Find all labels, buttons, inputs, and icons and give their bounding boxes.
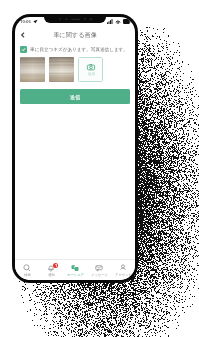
button[interactable]: 車に目立つキズがあります。写真送信します。 xyxy=(20,46,130,53)
button[interactable]: アカウント xyxy=(111,260,135,280)
staticText: 検索 xyxy=(24,273,31,277)
button[interactable]: 送信 xyxy=(20,89,130,104)
staticText: 通知 xyxy=(48,273,55,277)
button[interactable]: メッセージ xyxy=(87,260,111,280)
button[interactable]: Add photo xyxy=(78,57,103,82)
staticText: アカウント xyxy=(115,273,132,277)
staticText: メッセージ xyxy=(91,273,108,277)
button[interactable]: Back xyxy=(15,27,31,43)
staticText: 追加 xyxy=(88,72,95,76)
button[interactable]: カーシェア xyxy=(63,260,87,280)
button[interactable]: 1 xyxy=(39,260,63,280)
staticText: 1 xyxy=(55,264,57,268)
staticText: 10:06 xyxy=(20,19,31,25)
staticText: 車に関する画像 xyxy=(53,31,97,39)
staticText: 送信 xyxy=(70,94,80,100)
button[interactable]: Photo xyxy=(49,57,74,82)
button[interactable]: 検索 xyxy=(15,260,39,280)
button[interactable]: Photo xyxy=(20,57,45,82)
staticText: カーシェア xyxy=(67,273,84,277)
staticText: 車に目立つキズがあります。写真送信します。 xyxy=(30,47,128,53)
